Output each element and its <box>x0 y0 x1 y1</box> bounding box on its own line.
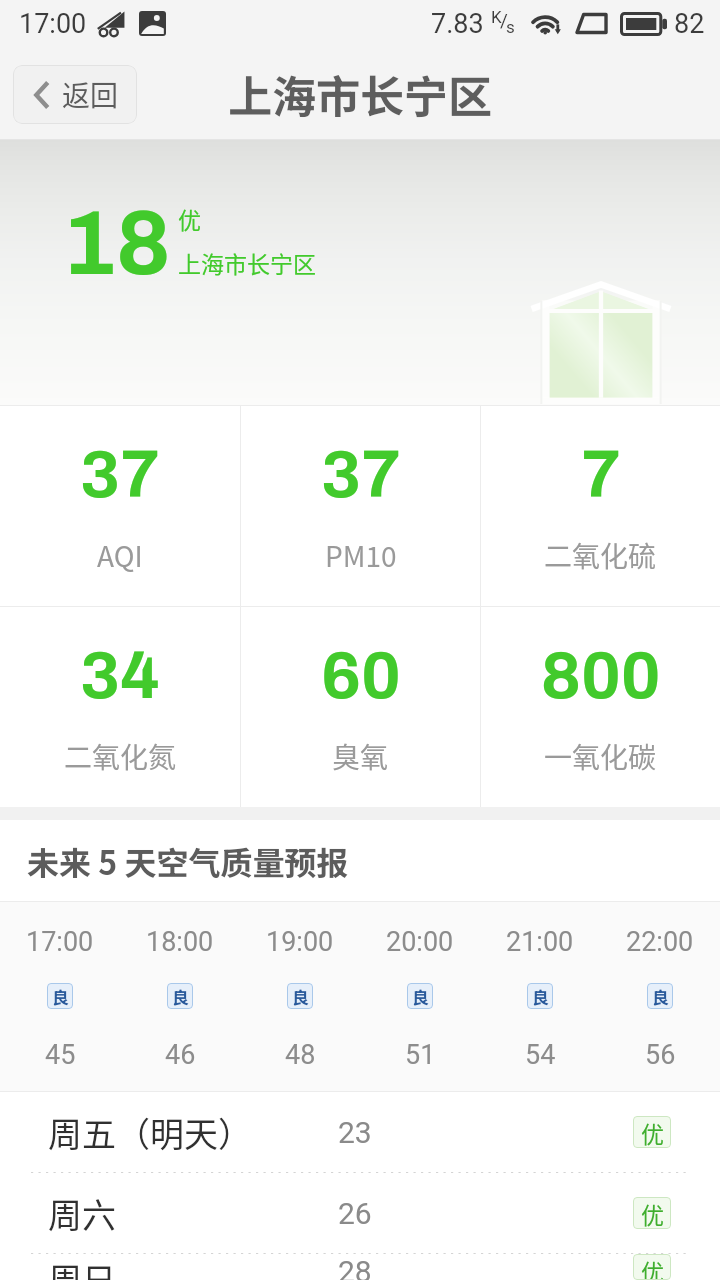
button[interactable]: 34 <box>0 607 240 807</box>
staticText: 37 <box>80 438 160 511</box>
staticText: 800 <box>541 639 661 712</box>
staticText: 良 <box>532 984 549 1009</box>
staticText: 51 <box>405 1039 436 1071</box>
button[interactable]: 37 <box>241 406 480 606</box>
staticText: s <box>506 17 515 37</box>
staticText: 优 <box>641 1116 664 1148</box>
staticText: 60 <box>321 639 401 712</box>
staticText: K <box>491 7 502 27</box>
button[interactable]: 周六 <box>0 1173 720 1253</box>
staticText: 良 <box>52 984 69 1009</box>
staticText: 21:00 <box>506 926 574 958</box>
staticText: 45 <box>45 1039 76 1071</box>
button[interactable]: 17:00 <box>0 902 120 1091</box>
staticText: 二氧化硫 <box>544 535 657 576</box>
staticText: 18 <box>62 194 171 293</box>
staticText: 优 <box>641 1197 664 1229</box>
button[interactable]: 7 <box>481 406 720 606</box>
staticText: 22:00 <box>626 926 694 958</box>
staticText: 未来 5 天空气质量预报 <box>27 838 349 884</box>
staticText: 7 <box>581 438 621 511</box>
staticText: 优 <box>178 202 201 235</box>
staticText: 56 <box>645 1039 676 1071</box>
staticText: 26 <box>338 1196 372 1231</box>
staticText: 23 <box>338 1115 372 1150</box>
staticText: 周六 <box>48 1189 116 1238</box>
staticText: 上海市长宁区 <box>228 62 492 126</box>
staticText: 7.83 <box>431 8 484 40</box>
button[interactable]: 返回 <box>13 65 137 124</box>
staticText: 46 <box>165 1039 196 1071</box>
staticText: 二氧化氮 <box>64 736 177 777</box>
staticText: 19:00 <box>266 926 334 958</box>
staticText: AQI <box>97 535 143 576</box>
button[interactable]: 周日 <box>0 1254 720 1280</box>
staticText: 臭氧 <box>332 736 389 777</box>
staticText: 优 <box>641 1254 664 1280</box>
staticText: 良 <box>292 984 309 1009</box>
staticText: 一氧化碳 <box>544 736 657 777</box>
staticText: 28 <box>338 1254 372 1280</box>
staticText: 17:00 <box>26 926 94 958</box>
button[interactable]: 19:00 <box>240 902 360 1091</box>
staticText: 34 <box>80 639 160 712</box>
button[interactable]: 37 <box>0 406 240 606</box>
staticText: 17:00 <box>19 8 87 40</box>
button[interactable]: 20:00 <box>360 902 480 1091</box>
staticText: 48 <box>285 1039 316 1071</box>
staticText: 82 <box>674 8 705 40</box>
button[interactable]: 周五（明天） <box>0 1092 720 1172</box>
button[interactable]: 22:00 <box>600 902 720 1091</box>
staticText: 返回 <box>62 74 119 115</box>
staticText: 上海市长宁区 <box>178 246 316 279</box>
staticText: 54 <box>525 1039 556 1071</box>
staticText: 良 <box>172 984 189 1009</box>
staticText: 周五（明天） <box>48 1108 252 1157</box>
staticText: PM10 <box>325 535 397 576</box>
button[interactable]: 60 <box>241 607 480 807</box>
staticText: 良 <box>412 984 429 1009</box>
staticText: 良 <box>652 984 669 1009</box>
staticText: 37 <box>321 438 401 511</box>
staticText: 18:00 <box>146 926 214 958</box>
button[interactable]: 800 <box>481 607 720 807</box>
button[interactable]: 18:00 <box>120 902 240 1091</box>
staticText: 周日 <box>48 1254 116 1280</box>
staticText: 20:00 <box>386 926 454 958</box>
button[interactable]: 21:00 <box>480 902 600 1091</box>
staticText: / <box>500 9 508 31</box>
